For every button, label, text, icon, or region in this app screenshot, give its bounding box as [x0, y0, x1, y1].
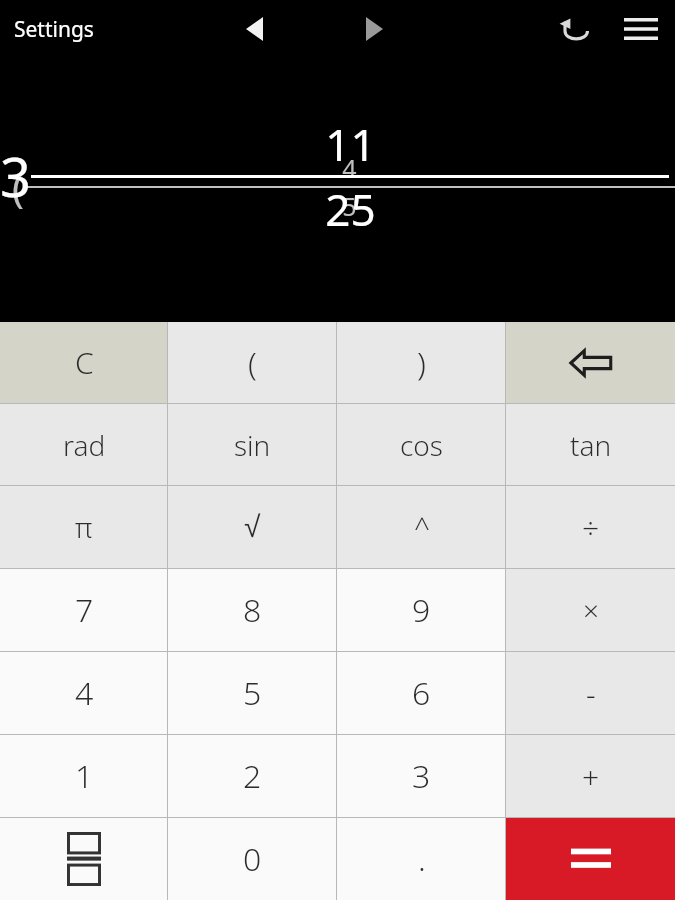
- button[interactable]: +: [506, 735, 675, 817]
- button[interactable]: 5: [168, 652, 337, 734]
- staticText: .: [418, 837, 426, 881]
- button[interactable]: π: [0, 486, 168, 568]
- staticText: 3: [412, 754, 431, 798]
- staticText: ^: [414, 508, 430, 546]
- button[interactable]: 3: [337, 735, 506, 817]
- staticText: cos: [400, 426, 443, 464]
- staticText: 0: [243, 837, 262, 881]
- staticText: sin: [234, 426, 271, 464]
- button[interactable]: Equals: [506, 818, 675, 900]
- staticText: 8: [243, 588, 262, 632]
- staticText: 3: [0, 139, 31, 213]
- staticText: 4: [75, 671, 94, 715]
- staticText: √: [244, 510, 261, 544]
- staticText: ): [417, 341, 426, 385]
- staticText: +: [582, 756, 600, 797]
- button[interactable]: √: [168, 486, 337, 568]
- staticText: tan: [570, 426, 612, 464]
- button[interactable]: 0: [168, 818, 337, 900]
- staticText: C: [75, 342, 94, 383]
- button[interactable]: tan: [506, 404, 675, 485]
- staticText: 2: [243, 754, 262, 798]
- button[interactable]: Next: [352, 7, 396, 51]
- staticText: 1: [75, 754, 94, 798]
- button[interactable]: Undo: [551, 6, 597, 52]
- staticText: rad: [63, 426, 106, 464]
- button[interactable]: 2: [168, 735, 337, 817]
- button[interactable]: 7: [0, 569, 168, 651]
- button[interactable]: 4: [0, 652, 168, 734]
- button[interactable]: Menu: [615, 3, 667, 55]
- staticText: 5: [342, 189, 357, 223]
- button[interactable]: sin: [168, 404, 337, 485]
- button[interactable]: cos: [337, 404, 506, 485]
- staticText: 5: [243, 671, 262, 715]
- staticText: 25: [325, 179, 376, 239]
- staticText: Settings: [14, 15, 94, 44]
- staticText: 11: [325, 114, 376, 174]
- button[interactable]: C: [0, 322, 168, 403]
- staticText: 4: [342, 151, 357, 185]
- staticText: 6: [412, 671, 431, 715]
- staticText: (: [12, 160, 24, 214]
- staticText: -: [586, 673, 596, 714]
- button[interactable]: ): [337, 322, 506, 403]
- button[interactable]: 1: [0, 735, 168, 817]
- button[interactable]: Backspace: [506, 322, 675, 403]
- staticText: 7: [75, 588, 94, 632]
- button[interactable]: Fraction: [0, 818, 168, 900]
- button[interactable]: (: [168, 322, 337, 403]
- button[interactable]: ×: [506, 569, 675, 651]
- button[interactable]: 8: [168, 569, 337, 651]
- button[interactable]: rad: [0, 404, 168, 485]
- button[interactable]: 6: [337, 652, 506, 734]
- staticText: ×: [583, 591, 599, 629]
- button[interactable]: Previous: [232, 7, 276, 51]
- staticText: π: [75, 508, 93, 546]
- staticText: 9: [412, 588, 431, 632]
- button[interactable]: ÷: [506, 486, 675, 568]
- button[interactable]: ^: [337, 486, 506, 568]
- staticText: ÷: [582, 507, 600, 548]
- button[interactable]: 9: [337, 569, 506, 651]
- staticText: (: [248, 341, 257, 385]
- button[interactable]: Settings: [10, 9, 98, 50]
- button[interactable]: -: [506, 652, 675, 734]
- button[interactable]: .: [337, 818, 506, 900]
